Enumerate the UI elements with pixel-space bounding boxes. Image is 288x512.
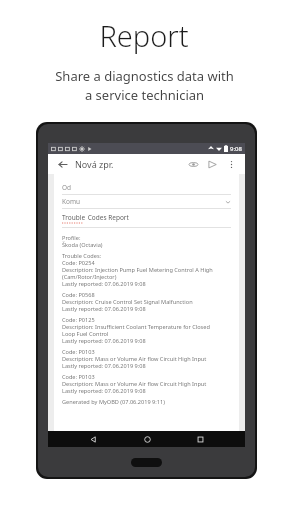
staticText: Lastly reported: 07.06.2019 9:08 <box>62 337 146 344</box>
staticText: Škoda (Octavia) <box>62 241 103 248</box>
staticText: Profile: <box>62 234 81 241</box>
staticText: Lastly reported: 07.06.2019 9:08 <box>62 387 146 394</box>
staticText: Share a diagnostics data with a service … <box>55 67 234 104</box>
button[interactable]: More options <box>224 157 239 172</box>
staticText: Description: Cruise Control Set Signal M… <box>62 298 193 305</box>
staticText: Description: Mass or Volume Air flow Cir… <box>62 380 207 387</box>
staticText: Lastly reported: 07.06.2019 9:08 <box>62 280 146 287</box>
button[interactable]: Recents <box>192 431 208 447</box>
button[interactable]: Home <box>139 431 155 447</box>
staticText: Description: Injection Pump Fuel Meterin… <box>62 266 213 273</box>
staticText: Code: P0103 <box>62 373 95 380</box>
staticText: Nová zpr. <box>75 158 114 170</box>
staticText: Code: P0568 <box>62 291 95 298</box>
staticText: Od <box>62 183 72 192</box>
staticText: Codes Report <box>86 213 129 222</box>
staticText: Description: Mass or Volume Air flow Cir… <box>62 355 207 362</box>
button[interactable]: Send <box>205 157 220 172</box>
staticText: Code: P0125 <box>62 316 95 323</box>
staticText: Generated by MyOBD (07.06.2019 9:11) <box>62 398 165 405</box>
button[interactable]: Back <box>85 431 101 447</box>
staticText: Trouble Codes: <box>62 252 102 259</box>
staticText: Loop Fuel Control <box>62 330 109 337</box>
button[interactable]: Attach <box>186 157 201 172</box>
button[interactable]: Back <box>54 156 70 172</box>
staticText: Code: P0254 <box>62 259 95 266</box>
staticText: Trouble <box>62 213 86 222</box>
staticText: Code: P0103 <box>62 348 95 355</box>
staticText: 9:08 <box>230 145 242 153</box>
staticText: Lastly reported: 07.06.2019 9:08 <box>62 362 146 369</box>
staticText: (Cam/Rotor/Injector) <box>62 273 117 280</box>
staticText: Komu <box>62 197 81 206</box>
staticText: Report <box>99 16 189 55</box>
staticText: Lastly reported: 07.06.2019 9:08 <box>62 305 146 312</box>
staticText: Description: Insufficient Coolant Temper… <box>62 323 210 330</box>
